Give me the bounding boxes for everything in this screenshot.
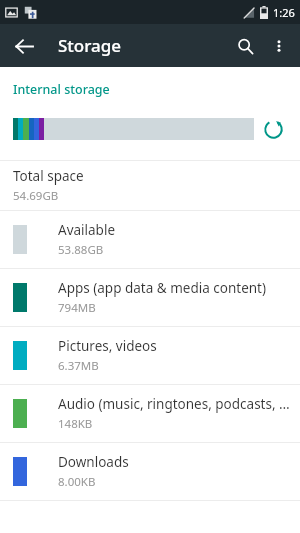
staticText: Total space bbox=[13, 167, 84, 185]
staticText: Pictures, videos bbox=[58, 337, 157, 355]
button[interactable]: Refresh bbox=[254, 110, 292, 148]
staticText: 794MB bbox=[58, 300, 96, 316]
staticText: 6.37MB bbox=[58, 358, 99, 374]
staticText: 148KB bbox=[58, 416, 93, 432]
button[interactable]: Apps (app data & media content) bbox=[0, 269, 300, 326]
staticText: 54.69GB bbox=[13, 188, 59, 204]
staticText: Internal storage bbox=[13, 81, 110, 98]
button[interactable]: More options bbox=[262, 29, 296, 63]
staticText: 8.00KB bbox=[58, 474, 96, 490]
staticText: Apps (app data & media content) bbox=[58, 279, 267, 297]
button[interactable]: Back bbox=[10, 32, 38, 60]
staticText: Downloads bbox=[58, 453, 129, 471]
staticText: Audio (music, ringtones, podcasts, et.. bbox=[58, 395, 290, 413]
staticText: 1:26 bbox=[273, 5, 295, 20]
staticText: Available bbox=[58, 221, 115, 239]
staticText: 53.88GB bbox=[58, 242, 104, 258]
button[interactable]: Total space bbox=[0, 161, 300, 210]
button[interactable]: Audio (music, ringtones, podcasts, et.. bbox=[0, 385, 300, 442]
button[interactable]: Search bbox=[228, 29, 262, 63]
button[interactable]: Pictures, videos bbox=[0, 327, 300, 384]
button[interactable]: Available bbox=[0, 211, 300, 268]
staticText: Storage bbox=[58, 34, 122, 57]
button[interactable]: Downloads bbox=[0, 443, 300, 500]
